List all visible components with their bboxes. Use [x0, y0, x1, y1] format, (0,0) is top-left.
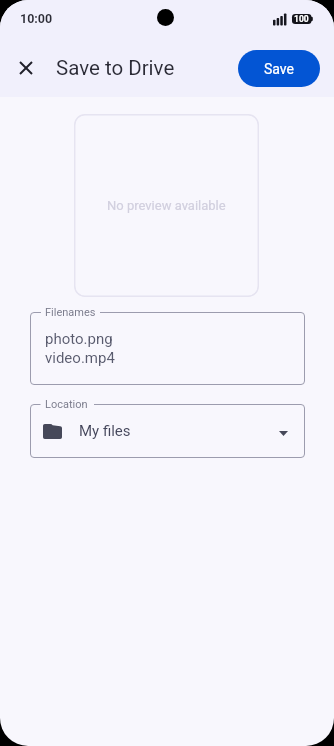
staticText: No preview available: [107, 198, 226, 213]
button[interactable]: photo.png: [30, 312, 305, 385]
staticText: photo.png: [45, 330, 113, 348]
staticText: 10:00: [20, 11, 53, 26]
staticText: My files: [79, 422, 131, 440]
staticText: video.mp4: [45, 349, 115, 367]
staticText: Location: [45, 398, 88, 411]
button[interactable]: Close: [6, 48, 46, 88]
staticText: Save to Drive: [56, 56, 175, 80]
staticText: Save: [264, 61, 294, 77]
button[interactable]: My files: [30, 404, 305, 458]
staticText: Filenames: [45, 306, 96, 319]
staticText: 100: [294, 14, 309, 24]
button[interactable]: Save: [238, 50, 320, 87]
